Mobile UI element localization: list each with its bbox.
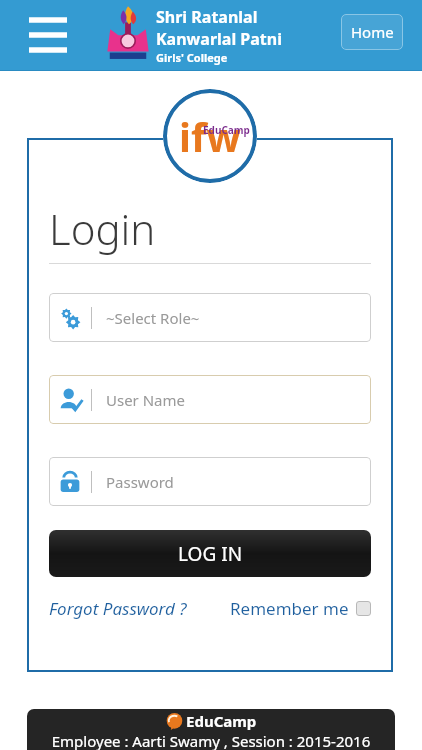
staticText: Password (106, 472, 174, 492)
staticText: Shri Ratanlal (156, 6, 258, 28)
staticText: User Name (106, 390, 186, 410)
staticText: Girls' College (156, 50, 228, 65)
staticText: Remember me (230, 597, 349, 620)
other: Role (57, 305, 83, 331)
other: Password (57, 469, 83, 495)
button[interactable]: Role (49, 293, 371, 342)
staticText: Forgot Password ? (49, 597, 187, 620)
button[interactable]: Home (341, 14, 403, 50)
staticText: LOG IN (178, 541, 243, 567)
staticText: ifw (179, 109, 241, 163)
button[interactable]: Password (49, 457, 371, 506)
button[interactable]: User (49, 375, 371, 424)
other: User (57, 387, 83, 413)
staticText: EduCamp (186, 711, 257, 731)
other: Remember me checkbox (356, 601, 371, 616)
staticText: EduCamp (203, 123, 250, 137)
staticText: Home (351, 22, 394, 42)
staticText: Kanwarlal Patni (156, 28, 282, 50)
staticText: Login (49, 200, 156, 257)
staticText: Employee : Aarti Swamy , Session : 2015-… (27, 731, 395, 750)
button[interactable]: Forgot Password ? (49, 595, 187, 622)
button[interactable]: Remember me (230, 597, 371, 620)
staticText: ~Select Role~ (106, 308, 200, 328)
button[interactable]: Menu (26, 18, 70, 52)
button[interactable]: LOG IN (49, 530, 371, 577)
